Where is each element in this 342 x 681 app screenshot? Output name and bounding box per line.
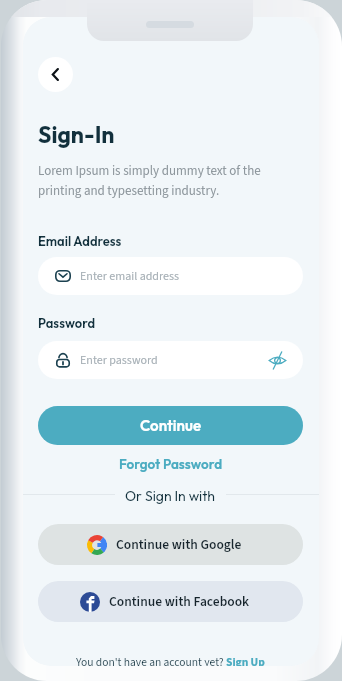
staticText: Email Address [38,233,122,249]
staticText: Continue with Google [116,535,242,554]
button[interactable]: Enter email address [38,257,303,295]
button[interactable]: Sign Up [226,654,265,666]
button[interactable]: Continue with Facebook [38,581,303,622]
button[interactable]: Back [38,57,73,92]
staticText: Continue [140,416,201,435]
staticText: Continue with Facebook [109,592,250,611]
staticText: Or Sign In with [125,487,216,505]
button[interactable]: Enter password [38,341,303,379]
staticText: Enter password [80,352,158,369]
button[interactable]: Show password [268,351,287,370]
button[interactable]: Continue [38,406,303,445]
staticText: Lorem Ipsum is simply dummy text of the … [38,162,261,201]
staticText: Sign-In [38,120,115,149]
staticText: You don't have an account yet? [76,654,226,666]
button[interactable]: Forgot Password [38,455,303,472]
button[interactable]: Continue with Google [38,524,303,565]
staticText: Password [38,315,96,331]
staticText: Enter email address [80,268,180,285]
staticText: Forgot Password [119,455,223,472]
